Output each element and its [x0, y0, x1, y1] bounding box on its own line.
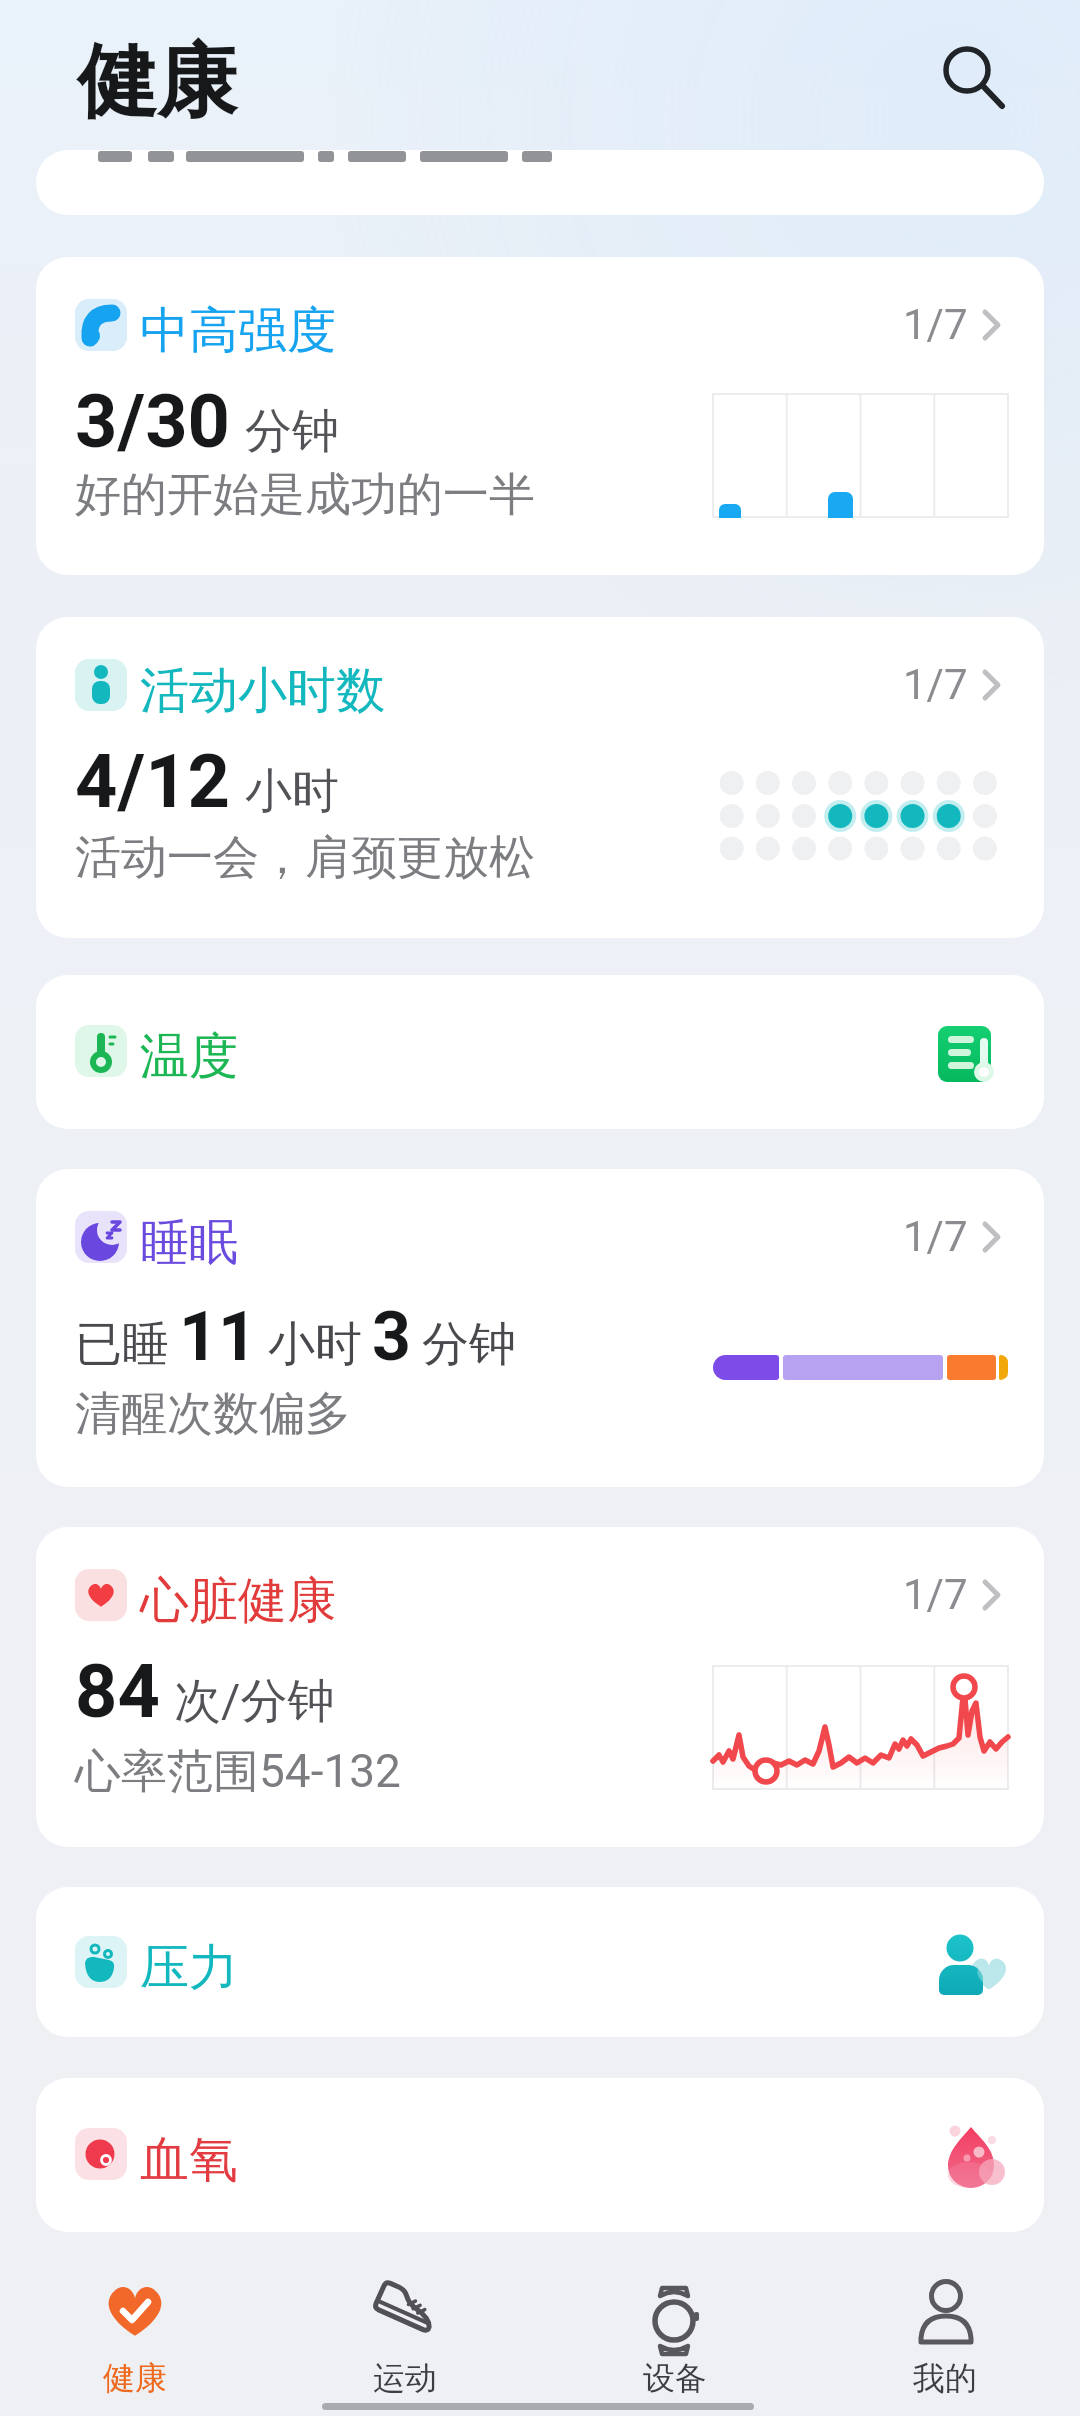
staticText: 1/7: [903, 660, 968, 709]
staticText: 中高强度: [140, 300, 336, 362]
staticText: 健康: [103, 2358, 167, 2398]
staticText: 1/7: [903, 1212, 968, 1261]
staticText: 温度: [140, 1026, 238, 1088]
button[interactable]: [36, 150, 1044, 215]
staticText: 好的开始是成功的一半: [75, 466, 535, 524]
staticText: 小时: [268, 1315, 362, 1374]
staticText: 3: [372, 1297, 412, 1377]
staticText: 心脏健康: [140, 1570, 336, 1632]
staticText: 1/7: [903, 300, 968, 349]
staticText: 压力: [140, 1937, 238, 1999]
staticText: 11: [179, 1297, 258, 1377]
staticText: 分钟: [422, 1315, 516, 1374]
staticText: 活动一会，肩颈更放松: [75, 829, 535, 887]
button[interactable]: 运动: [305, 2262, 505, 2402]
staticText: 次/分钟: [174, 1672, 335, 1731]
staticText: 4/12: [75, 738, 231, 825]
staticText: 1/7: [903, 1570, 968, 1619]
staticText: 已睡: [75, 1315, 169, 1374]
button[interactable]: 压力: [36, 1887, 1044, 2037]
button[interactable]: 设备: [575, 2262, 775, 2402]
button[interactable]: 健康: [35, 2262, 235, 2402]
staticText: 小时: [245, 762, 339, 821]
staticText: 设备: [643, 2358, 707, 2398]
button[interactable]: 我的: [845, 2262, 1045, 2402]
button[interactable]: 活动小时数: [36, 617, 1044, 938]
staticText: 心率范围54-132: [75, 1743, 401, 1801]
staticText: 活动小时数: [140, 660, 385, 722]
button[interactable]: 睡眠: [36, 1169, 1044, 1487]
button[interactable]: 中高强度: [36, 257, 1044, 575]
button[interactable]: 血氧: [36, 2078, 1044, 2232]
staticText: 3/30: [75, 378, 231, 465]
staticText: 睡眠: [140, 1212, 238, 1274]
button[interactable]: 温度: [36, 975, 1044, 1129]
staticText: 血氧: [140, 2129, 238, 2191]
staticText: 分钟: [245, 402, 339, 461]
staticText: 运动: [373, 2358, 437, 2398]
button[interactable]: [940, 42, 1008, 112]
staticText: 清醒次数偏多: [75, 1385, 351, 1443]
staticText: 我的: [913, 2358, 977, 2398]
button[interactable]: 心脏健康: [36, 1527, 1044, 1847]
staticText: 健康: [77, 32, 237, 133]
staticText: 84: [75, 1648, 160, 1735]
